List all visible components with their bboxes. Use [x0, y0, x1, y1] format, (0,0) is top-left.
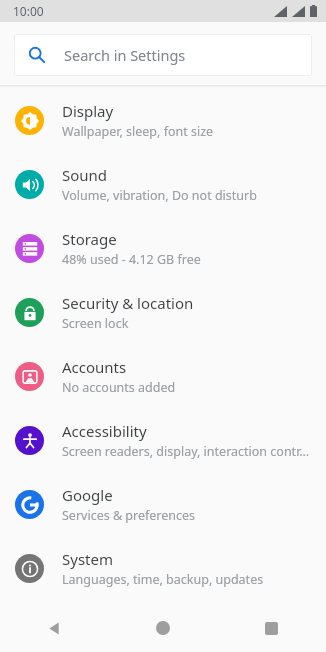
button[interactable]: Storage: [0, 216, 326, 280]
staticText: Accessibility: [62, 421, 147, 441]
button[interactable]: Accessibility: [0, 408, 326, 472]
staticText: Search in Settings: [64, 45, 186, 65]
button[interactable]: Display: [0, 88, 326, 152]
button[interactable]: Sound: [0, 152, 326, 216]
staticText: Display: [62, 101, 114, 121]
button[interactable]: Google: [0, 472, 326, 536]
staticText: Screen readers, display, interaction con…: [62, 443, 310, 460]
staticText: Google: [62, 485, 113, 505]
button[interactable]: Accounts: [0, 344, 326, 408]
button[interactable]: Home: [108, 604, 217, 652]
button[interactable]: Back: [0, 604, 108, 652]
staticText: Security & location: [62, 293, 194, 313]
staticText: Wallpaper, sleep, font size: [62, 123, 214, 140]
staticText: Accounts: [62, 357, 127, 377]
staticText: 10:00: [13, 3, 44, 19]
staticText: Sound: [62, 165, 108, 185]
staticText: Services & preferences: [62, 507, 196, 524]
button[interactable]: Recent apps: [217, 604, 326, 652]
button[interactable]: System: [0, 536, 326, 600]
staticText: Screen lock: [62, 315, 129, 332]
staticText: Storage: [62, 229, 117, 249]
staticText: Volume, vibration, Do not disturb: [62, 187, 257, 204]
staticText: 48% used - 4.12 GB free: [62, 251, 201, 268]
button[interactable]: Search in Settings: [14, 34, 312, 76]
staticText: System: [62, 549, 113, 569]
staticText: Languages, time, backup, updates: [62, 571, 264, 588]
staticText: No accounts added: [62, 379, 176, 396]
button[interactable]: Security & location: [0, 280, 326, 344]
